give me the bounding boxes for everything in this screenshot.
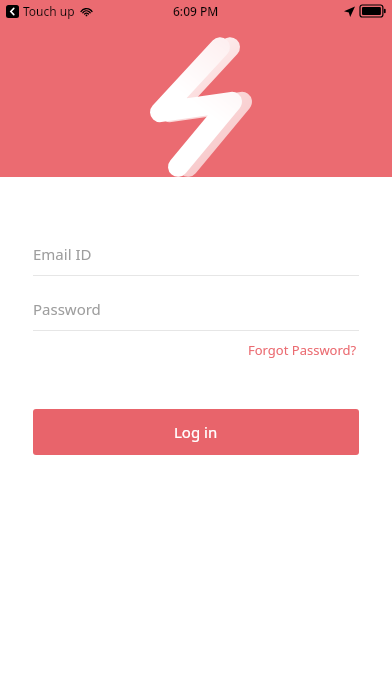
staticText: 6:09 PM [173,3,219,19]
button[interactable]: Forgot Password? [246,337,359,363]
other: App logo [148,42,248,172]
staticText: Forgot Password? [248,341,357,359]
staticText: Touch up [23,3,75,19]
staticText: Email ID [33,244,92,264]
button[interactable]: Log in [33,409,359,455]
staticText: Password [33,299,101,319]
staticText: Log in [174,422,218,442]
button[interactable]: Password [33,296,359,331]
button[interactable]: Email ID [33,241,359,276]
